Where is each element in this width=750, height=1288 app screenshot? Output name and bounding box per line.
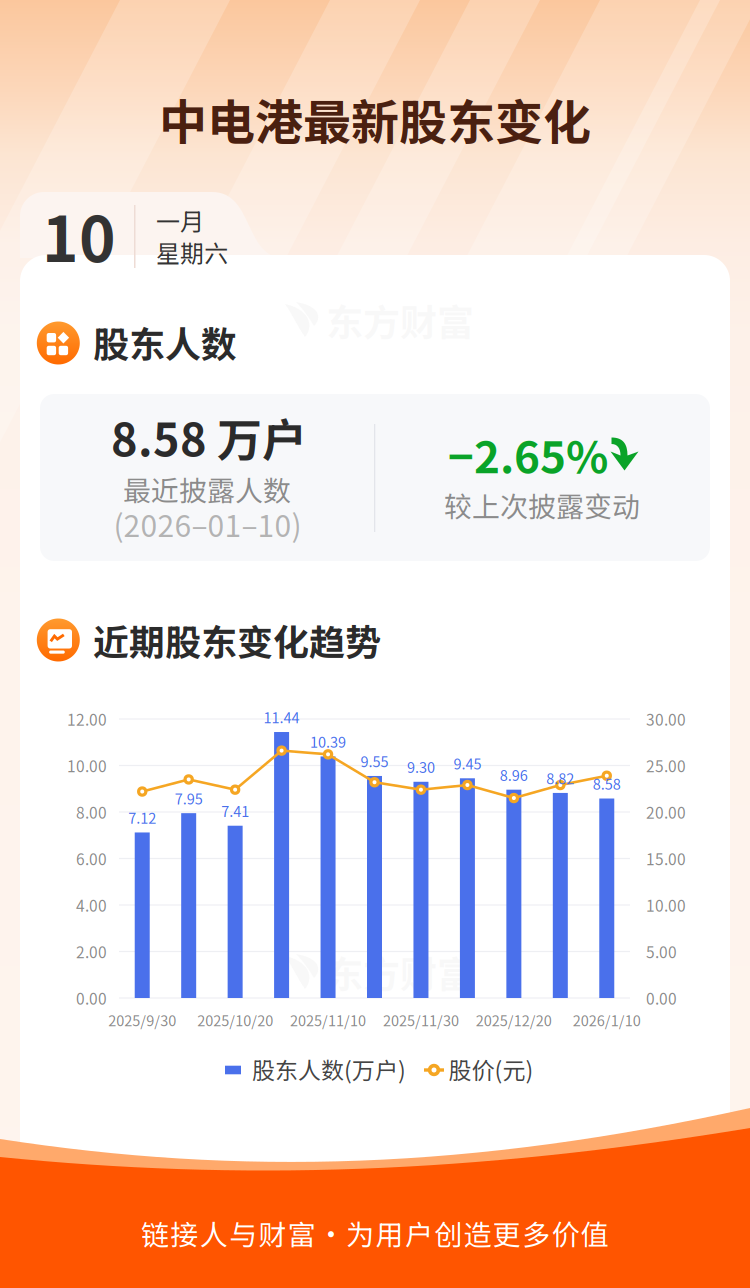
staticText: (2026–01–10) bbox=[113, 502, 301, 546]
staticText: 2.00 bbox=[76, 940, 107, 963]
staticText: 8.96 bbox=[500, 764, 528, 785]
staticText: 最近披露人数 bbox=[123, 469, 291, 509]
staticText: 10 bbox=[42, 190, 116, 280]
staticText: 2025/12/20 bbox=[476, 1009, 552, 1030]
staticText: 6.00 bbox=[76, 847, 107, 870]
staticText: 2025/10/20 bbox=[197, 1009, 273, 1030]
staticText: −2.65% bbox=[448, 422, 608, 486]
staticText: 8.58 万户 bbox=[111, 404, 307, 470]
staticText: 9.55 bbox=[360, 750, 388, 771]
staticText: 2025/11/10 bbox=[290, 1009, 366, 1030]
staticText: 11.44 bbox=[264, 706, 300, 727]
staticText: 股东人数(万户) bbox=[252, 1052, 406, 1086]
staticText: 7.95 bbox=[175, 788, 203, 809]
staticText: 中电港最新股东变化 bbox=[159, 84, 591, 154]
staticText: 8.58 bbox=[593, 773, 621, 794]
staticText: 15.00 bbox=[646, 847, 686, 870]
staticText: 8.82 bbox=[546, 767, 574, 788]
staticText: 近期股东变化趋势 bbox=[93, 614, 381, 666]
staticText: 25.00 bbox=[646, 754, 686, 777]
staticText: 10.00 bbox=[646, 894, 686, 916]
staticText: 2026/1/10 bbox=[573, 1009, 641, 1030]
staticText: 4.00 bbox=[76, 894, 107, 916]
staticText: 8.00 bbox=[76, 801, 107, 823]
staticText: 10.00 bbox=[67, 754, 107, 777]
staticText: 股东人数 bbox=[93, 316, 237, 368]
staticText: 0.00 bbox=[76, 987, 107, 1009]
staticText: 10.39 bbox=[310, 731, 346, 752]
staticText: 0.00 bbox=[646, 987, 677, 1009]
staticText: 2025/9/30 bbox=[108, 1009, 176, 1030]
staticText: 链接人与财富·为用户创造更多价值 bbox=[141, 1213, 609, 1253]
staticText: 20.00 bbox=[646, 801, 686, 823]
staticText: 9.45 bbox=[453, 753, 481, 774]
staticText: 东方财富 bbox=[326, 945, 474, 999]
staticText: 一月 bbox=[156, 203, 204, 237]
staticText: 7.41 bbox=[221, 800, 249, 821]
staticText: 12.00 bbox=[67, 708, 107, 730]
staticText: 5.00 bbox=[646, 940, 677, 963]
staticText: 较上次披露变动 bbox=[444, 485, 640, 525]
staticText: 2025/11/30 bbox=[383, 1009, 459, 1030]
staticText: 30.00 bbox=[646, 708, 686, 730]
staticText: 7.12 bbox=[128, 807, 156, 828]
staticText: 星期六 bbox=[156, 235, 228, 269]
staticText: 9.30 bbox=[407, 756, 435, 777]
staticText: 股价(元) bbox=[448, 1052, 533, 1086]
